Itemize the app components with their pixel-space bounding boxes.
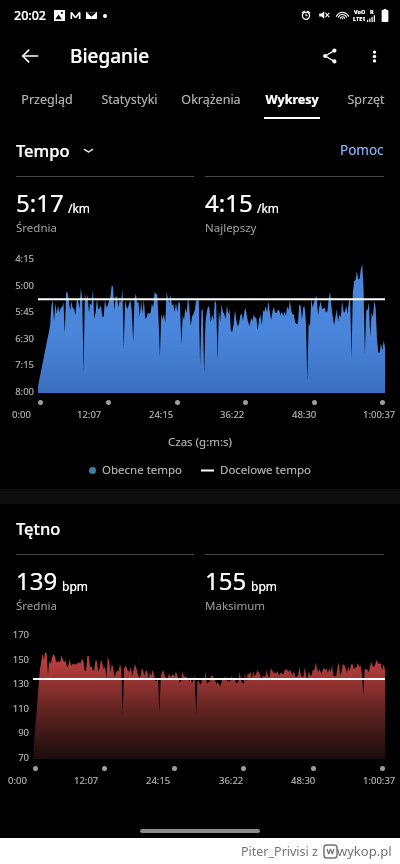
staticText: Tętno: [16, 517, 61, 539]
staticText: Czas (g:m:s): [0, 434, 400, 450]
staticText: 5:45: [15, 305, 34, 318]
staticText: Piter_Privisi z: [241, 843, 318, 860]
staticText: Docelowe tempo: [220, 462, 311, 478]
staticText: Średnia: [16, 220, 57, 236]
staticText: Okrążenia: [181, 91, 241, 108]
button[interactable]: Tempo: [16, 139, 95, 161]
staticText: 4:15: [15, 252, 34, 265]
staticText: 1:00:37: [363, 408, 396, 421]
staticText: 6:30: [15, 332, 34, 345]
staticText: 170: [12, 628, 29, 641]
staticText: 155: [205, 564, 247, 597]
staticText: 0:00: [8, 774, 27, 787]
button[interactable]: Pomoc: [340, 141, 384, 159]
staticText: /km: [257, 200, 280, 216]
staticText: 20:02: [14, 7, 47, 24]
staticText: 36:22: [220, 408, 245, 421]
staticText: 48:30: [292, 408, 317, 421]
staticText: 5:00: [15, 279, 34, 292]
staticText: Przegląd: [21, 91, 73, 108]
staticText: 70: [18, 751, 29, 764]
staticText: 4:15: [205, 186, 253, 219]
staticText: Sprzęt: [347, 91, 385, 108]
staticText: 36:22: [219, 774, 244, 787]
staticText: 110: [12, 702, 29, 715]
staticText: 139: [16, 564, 58, 597]
staticText: Maksimum: [205, 598, 266, 614]
staticText: Statystyki: [101, 91, 158, 108]
button[interactable]: Więcej opcji: [352, 34, 396, 78]
staticText: 150: [12, 653, 29, 666]
staticText: 12:07: [77, 408, 102, 421]
staticText: bpm: [62, 578, 88, 594]
staticText: 1:00:37: [363, 774, 396, 787]
staticText: 24:15: [146, 774, 171, 787]
button[interactable]: Wstecz: [8, 34, 52, 78]
staticText: 8:00: [15, 385, 34, 398]
staticText: Wykresy: [265, 91, 319, 108]
staticText: LTE1: [353, 15, 366, 22]
staticText: R: [370, 8, 374, 15]
staticText: 48:30: [291, 774, 316, 787]
staticText: 5:17: [16, 186, 64, 219]
staticText: 24:15: [149, 408, 174, 421]
staticText: 7:15: [15, 358, 34, 371]
staticText: 12:07: [74, 774, 99, 787]
button[interactable]: Wykresy: [251, 82, 332, 127]
staticText: VoO: [354, 8, 366, 15]
staticText: Obecne tempo: [102, 462, 183, 478]
staticText: 90: [18, 726, 29, 739]
staticText: 0:00: [12, 408, 31, 421]
staticText: Średnia: [16, 598, 57, 614]
button[interactable]: Statystyki: [88, 82, 170, 127]
staticText: Tempo: [16, 139, 70, 161]
staticText: wykop.pl: [337, 842, 392, 860]
staticText: Najlepszy: [205, 220, 257, 236]
button[interactable]: Okrążenia: [170, 82, 251, 127]
button[interactable]: Sprzęt: [332, 82, 400, 127]
staticText: Pomoc: [340, 141, 384, 159]
staticText: bpm: [251, 578, 277, 594]
button[interactable]: Przegląd: [6, 82, 88, 127]
button[interactable]: Udostępnij: [308, 34, 352, 78]
staticText: /km: [68, 200, 91, 216]
staticText: Bieganie: [70, 43, 150, 69]
staticText: 130: [12, 677, 29, 690]
